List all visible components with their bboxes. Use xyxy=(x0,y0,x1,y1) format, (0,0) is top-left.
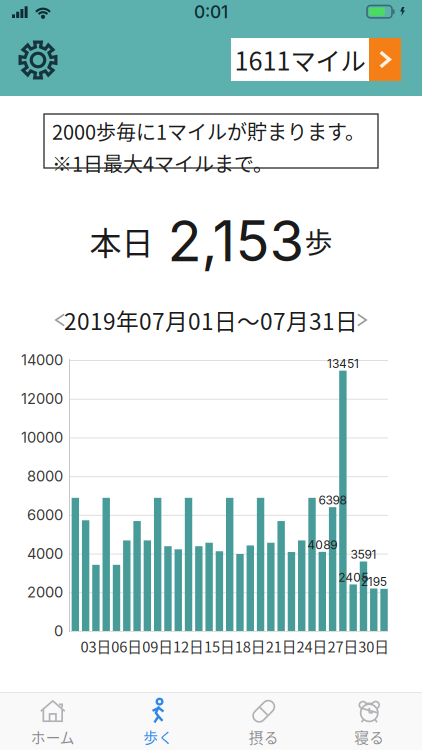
staticText: 0 xyxy=(54,622,63,640)
staticText: 摂る xyxy=(249,726,279,747)
staticText: 6000 xyxy=(27,506,63,524)
staticText: 歩 xyxy=(304,221,332,261)
staticText: 1611マイル xyxy=(234,41,365,78)
button[interactable]: 次の期間 xyxy=(345,303,379,337)
staticText: 12000 xyxy=(21,390,63,407)
staticText: ※1日最大4マイルまで。 xyxy=(52,148,273,177)
button[interactable]: 設定 xyxy=(9,31,67,89)
staticText: 27日 xyxy=(327,635,358,657)
staticText: 寝る xyxy=(354,726,384,747)
staticText: 歩く xyxy=(143,726,173,747)
staticText: 2000歩毎に1マイルが貯まります。 xyxy=(52,116,365,145)
staticText: 06日 xyxy=(111,635,142,657)
staticText: 14000 xyxy=(21,351,63,369)
staticText: 03日 xyxy=(80,635,111,657)
staticText: 4000 xyxy=(27,545,63,562)
button[interactable]: ホーム xyxy=(0,693,105,750)
button[interactable]: 摂る xyxy=(211,693,316,750)
staticText: 15日 xyxy=(204,635,235,657)
button[interactable]: 寝る xyxy=(316,693,422,750)
staticText: ホーム xyxy=(31,726,75,747)
staticText: 2405 xyxy=(338,570,368,585)
staticText: 4089 xyxy=(307,538,337,552)
staticText: 2195 xyxy=(361,574,387,589)
staticText: 本日 xyxy=(89,218,153,264)
staticText: 0:01 xyxy=(194,1,228,22)
staticText: 09日 xyxy=(142,635,173,657)
staticText: 6398 xyxy=(319,493,347,507)
staticText: 2000 xyxy=(27,583,63,601)
staticText: 13451 xyxy=(327,356,359,371)
staticText: 24日 xyxy=(296,635,327,657)
staticText: 2019年07月01日～07月31日 xyxy=(64,304,358,336)
staticText: 12日 xyxy=(173,635,204,657)
button[interactable]: 1611マイル xyxy=(231,38,401,81)
staticText: 21日 xyxy=(266,635,297,657)
staticText: 30日 xyxy=(358,635,389,657)
staticText: 10000 xyxy=(21,429,63,446)
staticText: 3591 xyxy=(350,547,376,562)
staticText: 8000 xyxy=(27,467,63,485)
button[interactable]: 前の期間 xyxy=(43,303,77,337)
staticText: 18日 xyxy=(235,635,266,657)
button[interactable]: 歩く xyxy=(105,693,211,750)
staticText: 2,153 xyxy=(167,207,304,275)
